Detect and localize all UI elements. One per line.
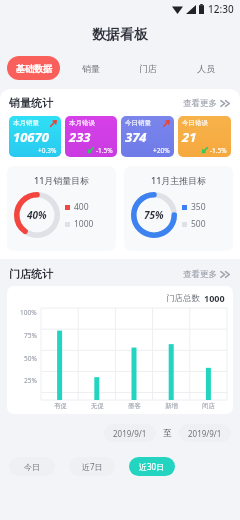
- staticText: 今日销量: [125, 119, 151, 127]
- staticText: 75%: [144, 208, 164, 222]
- button[interactable]: 11月主推目标: [124, 166, 233, 251]
- staticText: 数据看板: [92, 26, 148, 44]
- staticText: +0.3%: [38, 146, 57, 154]
- staticText: 门店统计: [9, 267, 53, 281]
- staticText: 2019/9/1: [188, 428, 222, 439]
- staticText: 233: [69, 128, 91, 146]
- staticText: 查看更多: [183, 269, 217, 280]
- staticText: 新增: [165, 402, 178, 410]
- button[interactable]: 查看更多: [183, 98, 231, 109]
- staticText: 闭店: [202, 402, 215, 410]
- button[interactable]: 2019/9/1: [179, 424, 231, 442]
- staticText: 11月销量目标: [34, 174, 90, 186]
- staticText: 至: [163, 428, 172, 439]
- staticText: 门店总数: [166, 293, 200, 304]
- staticText: -1.5%: [96, 146, 113, 154]
- staticText: 本月错误: [69, 119, 95, 127]
- staticText: +20%: [153, 146, 170, 154]
- staticText: 近30日: [139, 461, 165, 472]
- staticText: 40%: [27, 208, 47, 222]
- staticText: 门店: [139, 63, 157, 74]
- button[interactable]: 11月销量目标: [7, 166, 116, 251]
- staticText: 11月主推目标: [151, 174, 207, 186]
- button[interactable]: 本月销量: [9, 116, 61, 157]
- button[interactable]: 今日: [9, 457, 55, 476]
- button[interactable]: 门店: [121, 56, 175, 80]
- button[interactable]: 基础数据: [7, 56, 60, 80]
- button[interactable]: 销量: [64, 56, 117, 80]
- staticText: 25%: [24, 376, 37, 385]
- button[interactable]: 人员: [179, 56, 233, 80]
- staticText: 人员: [197, 63, 215, 74]
- staticText: 近7日: [82, 461, 103, 472]
- staticText: 墨客: [128, 402, 141, 410]
- staticText: 基础数据: [16, 63, 52, 74]
- staticText: 400: [74, 201, 89, 213]
- staticText: 无促: [91, 402, 104, 410]
- button[interactable]: 近7日: [69, 457, 115, 476]
- staticText: 100%: [20, 308, 37, 317]
- staticText: 21: [182, 128, 197, 146]
- staticText: 销量: [82, 63, 100, 74]
- staticText: 今日: [24, 462, 40, 472]
- staticText: 销量统计: [9, 96, 53, 110]
- staticText: 1000: [204, 292, 225, 304]
- button[interactable]: 近30日: [129, 457, 175, 476]
- button[interactable]: 查看更多: [183, 269, 231, 280]
- button[interactable]: 今日错误: [178, 116, 231, 157]
- button[interactable]: 2019/9/1: [104, 424, 156, 442]
- staticText: 本月销量: [13, 119, 39, 127]
- staticText: 350: [191, 201, 206, 213]
- staticText: 50%: [24, 354, 37, 363]
- staticText: 有促: [54, 402, 67, 410]
- staticText: -1.5%: [210, 146, 227, 154]
- staticText: 1000: [74, 218, 94, 230]
- staticText: 374: [125, 128, 147, 146]
- staticText: 10670: [13, 128, 49, 146]
- staticText: 12:30: [208, 2, 234, 16]
- staticText: 查看更多: [183, 98, 217, 109]
- staticText: 今日错误: [182, 119, 208, 127]
- button[interactable]: 本月错误: [65, 116, 117, 157]
- staticText: 75%: [24, 331, 37, 340]
- staticText: 500: [191, 218, 206, 230]
- button[interactable]: 今日销量: [121, 116, 174, 157]
- staticText: 2019/9/1: [113, 428, 147, 439]
